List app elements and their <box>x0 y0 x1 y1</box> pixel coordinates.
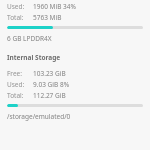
staticText: /storage/emulated/0 <box>7 112 71 121</box>
staticText: 6 GB LPDDR4X <box>7 34 52 43</box>
staticText: 5763 MiB <box>33 13 62 22</box>
staticText: 9.03 GiB 8% <box>33 80 70 89</box>
button[interactable]: Used: <box>0 80 150 89</box>
staticText: 103.23 GiB <box>33 69 66 78</box>
other: Device memory and storage information <box>0 0 150 150</box>
staticText: Used: <box>7 2 33 11</box>
staticText: Total: <box>7 13 33 22</box>
staticText: Free: <box>7 69 33 78</box>
button[interactable]: Total: <box>0 13 150 22</box>
button[interactable]: Used: <box>0 2 150 11</box>
staticText: 112.27 GiB <box>33 91 66 100</box>
staticText: 1960 MiB 34% <box>33 2 76 11</box>
staticText: Used: <box>7 80 33 89</box>
staticText: Internal Storage <box>7 53 61 62</box>
button[interactable]: Free: <box>0 69 150 78</box>
staticText: Total: <box>7 91 33 100</box>
button[interactable]: Total: <box>0 91 150 100</box>
